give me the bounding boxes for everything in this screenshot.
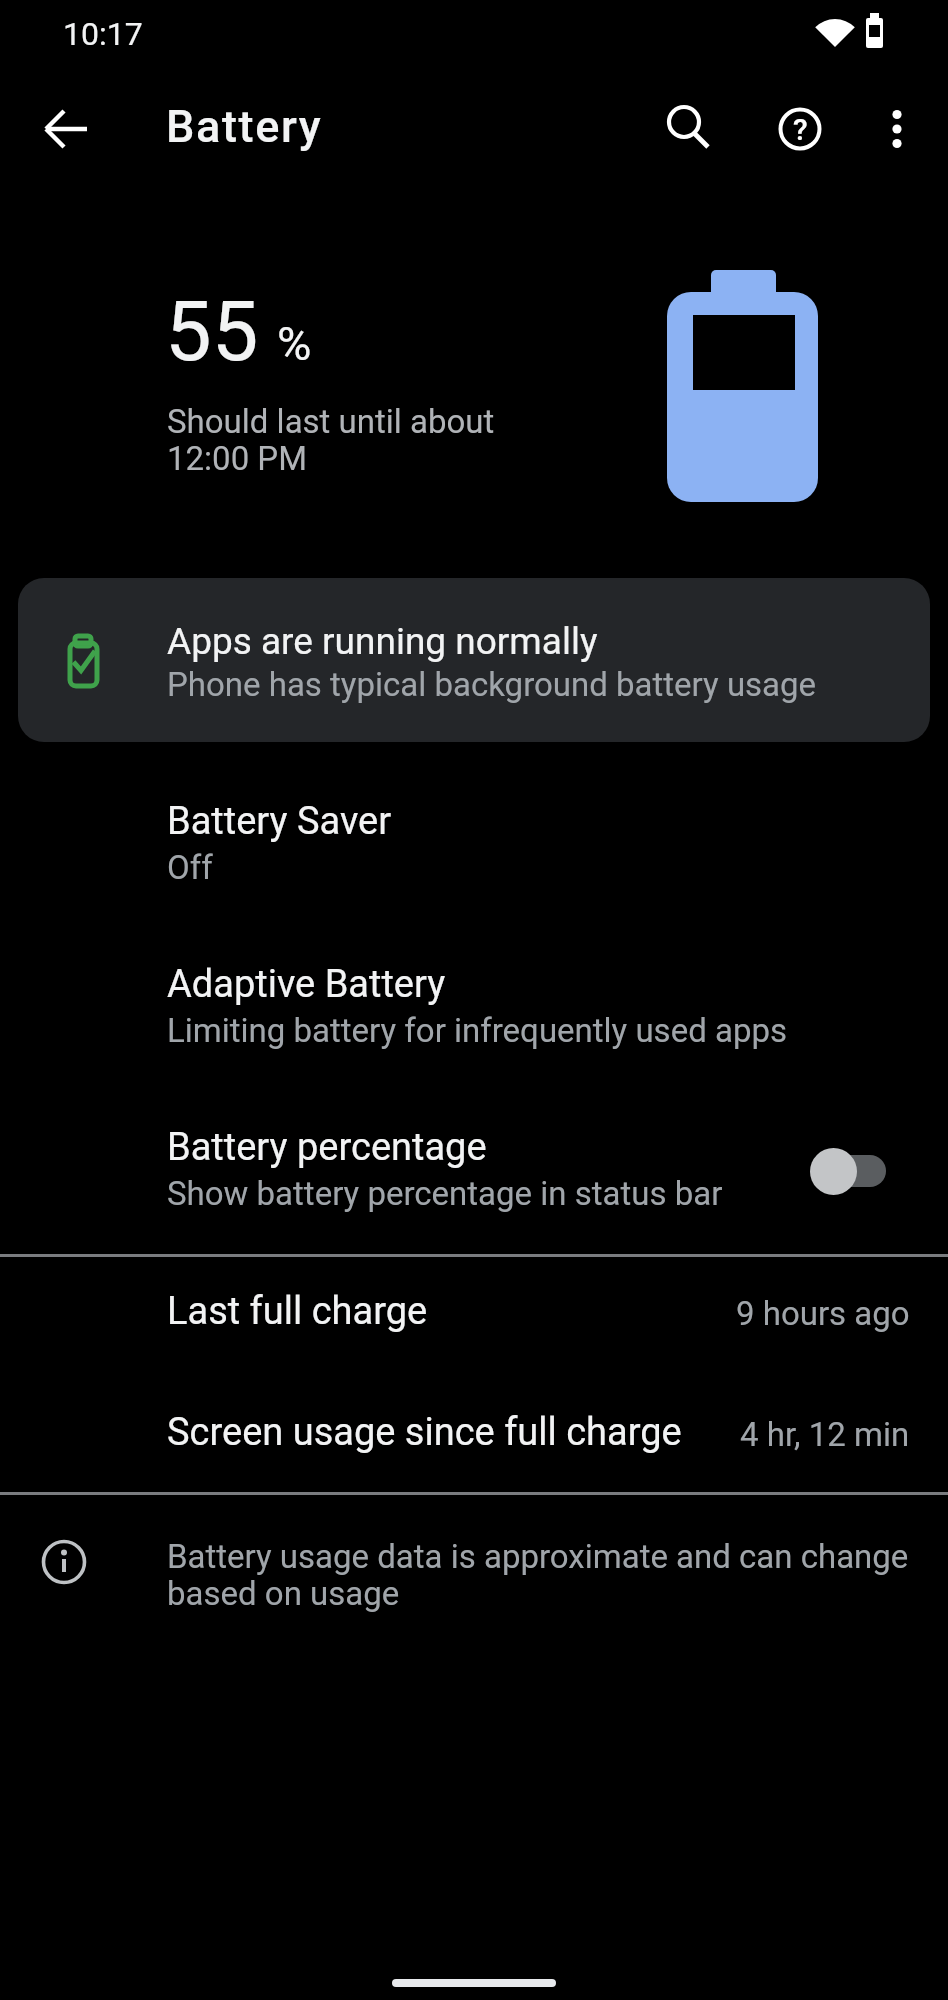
button[interactable] [873,97,921,161]
button[interactable]: Battery percentage [0,1096,948,1246]
staticText: Show battery percentage in status bar [167,1174,723,1213]
button[interactable] [654,97,718,161]
button[interactable]: Screen usage since full charge [0,1382,948,1502]
staticText: Battery usage data is approximate and ca… [167,1537,909,1576]
staticText: Screen usage since full charge [167,1410,682,1455]
staticText: Battery Saver [167,799,392,844]
staticText: 12:00 PM [167,439,307,478]
staticText: Battery percentage [167,1125,487,1170]
staticText: based on usage [167,1574,400,1613]
staticText: Limiting battery for infrequently used a… [167,1011,787,1050]
staticText: Adaptive Battery [167,962,446,1007]
button[interactable]: Adaptive Battery [0,933,948,1083]
button[interactable] [33,97,97,161]
staticText: 4 hr, 12 min [740,1415,910,1454]
staticText: Battery [166,100,323,153]
staticText: % [277,316,312,371]
staticText: Apps are running normally [167,620,598,663]
button[interactable]: ? [768,97,832,161]
staticText: Phone has typical background battery usa… [167,665,817,704]
button[interactable]: Apps are running normally [18,578,930,742]
staticText: 10:17 [63,15,143,53]
staticText: Last full charge [167,1289,428,1334]
staticText: Should last until about [167,402,495,441]
button[interactable]: Battery Saver [0,770,948,920]
staticText: 55 [165,283,259,380]
staticText: Off [167,848,213,887]
staticText: 9 hours ago [736,1294,910,1333]
button[interactable]: Last full charge [0,1262,948,1382]
staticText: ? [793,112,808,147]
